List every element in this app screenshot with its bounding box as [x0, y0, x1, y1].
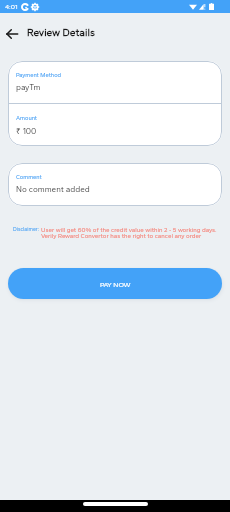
staticText: Disclaimer: — [13, 226, 39, 232]
staticText: No comment added — [16, 184, 90, 194]
staticText: Payment Method — [16, 71, 62, 78]
button[interactable]: Back — [3, 25, 20, 42]
staticText: payTm — [16, 82, 41, 92]
staticText: ₹ 100 — [16, 125, 37, 136]
staticText: Review Details — [27, 26, 95, 38]
staticText: Amount — [16, 114, 38, 121]
staticText: Comment — [16, 173, 42, 180]
staticText: 4:01 — [5, 3, 18, 11]
staticText: User will get 60% of the credit value wi… — [41, 226, 217, 240]
staticText: PAY NOW — [100, 280, 131, 288]
button[interactable]: PAY NOW — [8, 268, 222, 299]
